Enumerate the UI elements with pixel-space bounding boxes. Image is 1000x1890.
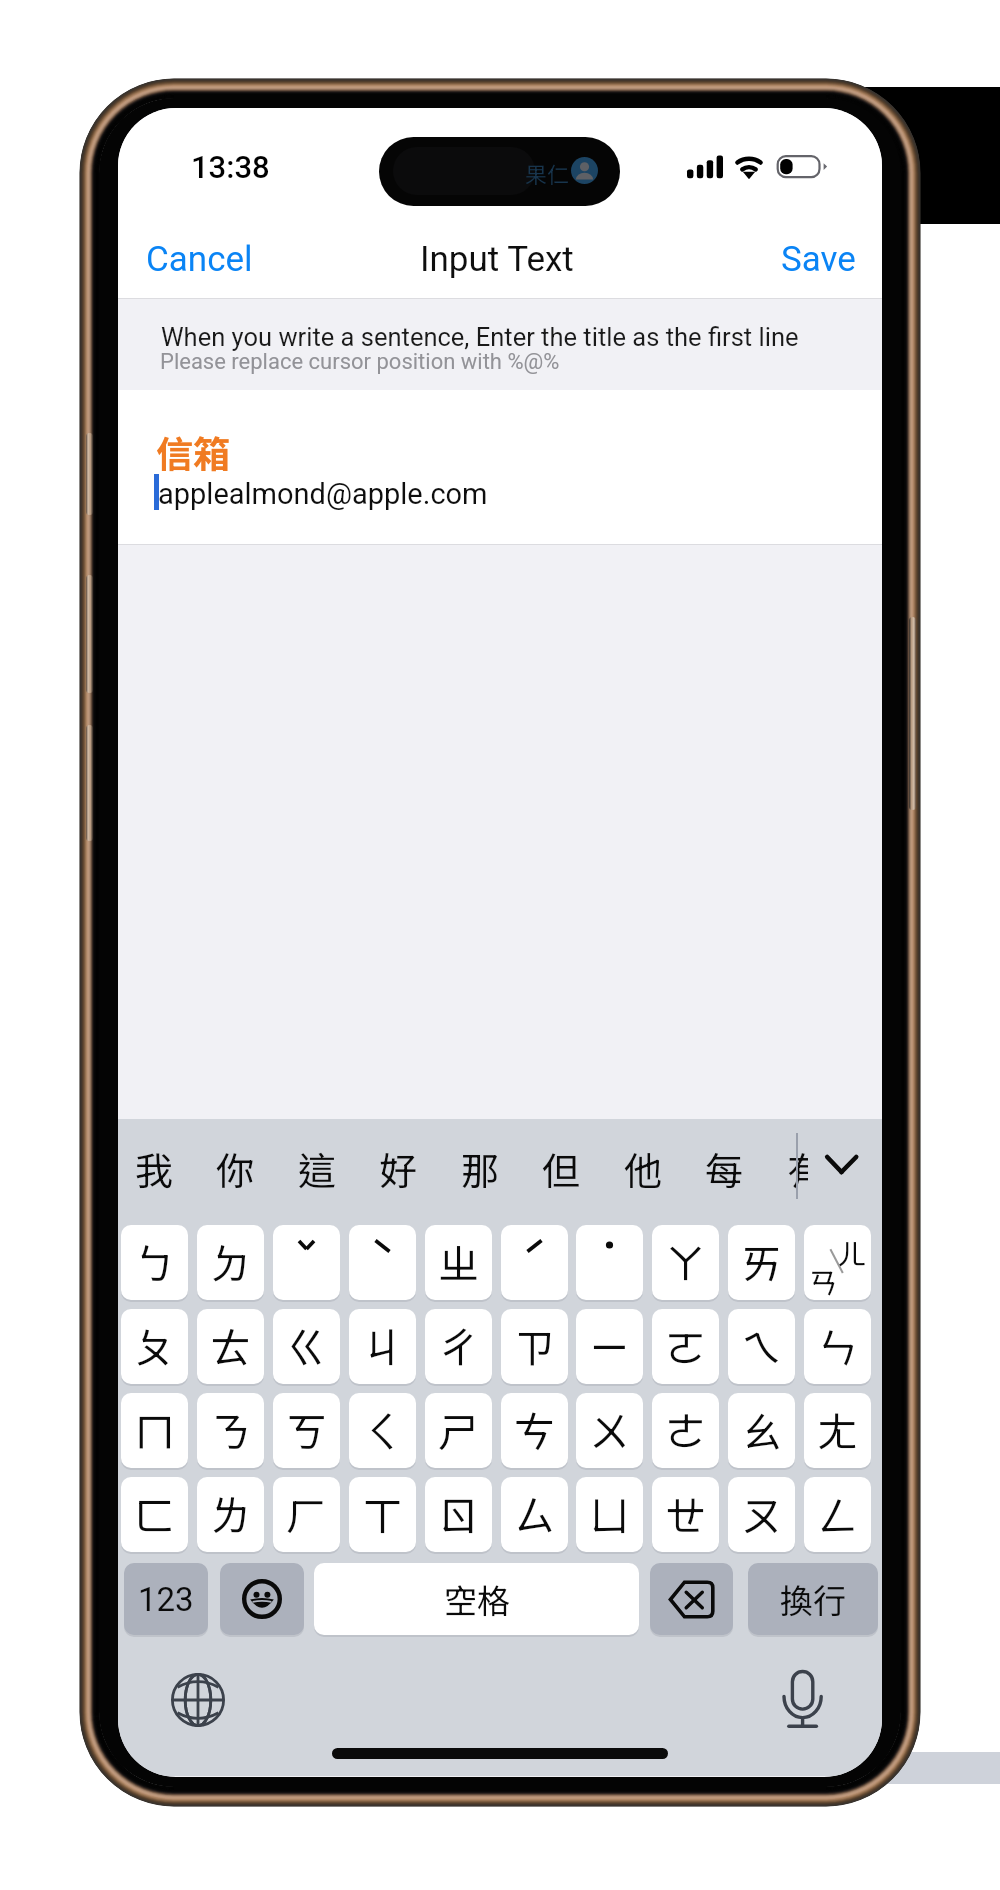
button[interactable]: ㄨ bbox=[576, 1393, 643, 1468]
staticText: ㄈ bbox=[134, 1483, 175, 1542]
staticText: 好 bbox=[379, 1141, 418, 1196]
staticText: 空格 bbox=[444, 1575, 510, 1623]
button[interactable]: ㄊ bbox=[197, 1309, 264, 1384]
button[interactable]: 有 bbox=[766, 1119, 846, 1217]
button[interactable]: ㄩ bbox=[576, 1477, 643, 1552]
staticText: ㄗ bbox=[514, 1315, 555, 1374]
staticText: ㄌ bbox=[210, 1483, 251, 1542]
button[interactable]: ㄧ bbox=[576, 1309, 643, 1384]
button[interactable]: ㄥ bbox=[804, 1477, 871, 1552]
staticText: 123 bbox=[138, 1580, 194, 1619]
staticText: ㄦ bbox=[837, 1231, 867, 1273]
button[interactable]: Dictation bbox=[766, 1662, 838, 1734]
staticText: ㄛ bbox=[665, 1315, 706, 1374]
button[interactable]: ㄟ bbox=[728, 1309, 795, 1384]
button[interactable]: Hide predictions bbox=[808, 1119, 882, 1217]
staticText: 果仁 bbox=[525, 157, 570, 189]
staticText: ㄐ bbox=[362, 1315, 403, 1374]
button[interactable]: Change keyboard bbox=[162, 1664, 234, 1736]
staticText: ㄣ bbox=[817, 1315, 858, 1374]
button[interactable]: ㄕ bbox=[425, 1393, 492, 1468]
button[interactable]: ㄓ bbox=[425, 1225, 492, 1300]
button[interactable]: 換行 bbox=[748, 1563, 878, 1635]
button[interactable]: 好 bbox=[358, 1119, 438, 1217]
staticText: ㄋ bbox=[210, 1399, 251, 1458]
staticText: ㄒ bbox=[362, 1483, 403, 1542]
staticText: applealmond@apple.com bbox=[158, 477, 488, 511]
button[interactable]: ㄑ bbox=[349, 1393, 416, 1468]
button[interactable]: ㄏ bbox=[273, 1477, 340, 1552]
button[interactable]: ㄠ bbox=[728, 1393, 795, 1468]
staticText: Cancel bbox=[146, 239, 253, 280]
staticText: 但 bbox=[542, 1141, 581, 1196]
button[interactable]: 他 bbox=[603, 1119, 683, 1217]
button[interactable]: ㄛ bbox=[652, 1309, 719, 1384]
button[interactable]: ㄉ bbox=[197, 1225, 264, 1300]
staticText: 那 bbox=[461, 1141, 500, 1196]
button[interactable]: Emoji bbox=[220, 1563, 304, 1635]
button[interactable]: ㄆ bbox=[121, 1309, 188, 1384]
button[interactable]: Save bbox=[759, 225, 876, 296]
staticText: 我 bbox=[135, 1141, 174, 1196]
button[interactable] bbox=[349, 1225, 416, 1300]
staticText: ㄤ bbox=[817, 1399, 858, 1458]
button[interactable]: ㄙ bbox=[501, 1477, 568, 1552]
staticText: When you write a sentence, Enter the tit… bbox=[161, 322, 799, 352]
button[interactable]: ㄔ bbox=[425, 1309, 492, 1384]
staticText: ㄚ bbox=[665, 1231, 706, 1290]
button[interactable] bbox=[576, 1225, 643, 1300]
staticText: ㄡ bbox=[741, 1483, 782, 1542]
staticText: ㄠ bbox=[741, 1399, 782, 1458]
button[interactable]: ㄢ bbox=[804, 1225, 871, 1300]
staticText: ㄆ bbox=[134, 1315, 175, 1374]
button[interactable]: 每 bbox=[684, 1119, 764, 1217]
staticText: 信箱 bbox=[156, 425, 230, 479]
button[interactable]: ㄚ bbox=[652, 1225, 719, 1300]
button[interactable]: ㄎ bbox=[273, 1393, 340, 1468]
button[interactable]: 但 bbox=[521, 1119, 601, 1217]
button[interactable] bbox=[273, 1225, 340, 1300]
button[interactable]: 空格 bbox=[314, 1563, 639, 1635]
button[interactable]: ㄞ bbox=[728, 1225, 795, 1300]
button[interactable]: ㄣ bbox=[804, 1309, 871, 1384]
button[interactable]: ㄡ bbox=[728, 1477, 795, 1552]
button[interactable]: Backspace bbox=[650, 1563, 733, 1635]
staticText: 他 bbox=[624, 1141, 663, 1196]
staticText: 每 bbox=[705, 1141, 744, 1196]
button[interactable]: ㄐ bbox=[349, 1309, 416, 1384]
button[interactable]: ㄅ bbox=[121, 1225, 188, 1300]
staticText: ㄧ bbox=[589, 1315, 630, 1374]
staticText: ㄉ bbox=[210, 1231, 251, 1290]
button[interactable]: ㄗ bbox=[501, 1309, 568, 1384]
button[interactable]: ㄇ bbox=[121, 1393, 188, 1468]
staticText: ㄓ bbox=[438, 1231, 479, 1290]
button[interactable]: 這 bbox=[277, 1119, 357, 1217]
staticText: ㄘ bbox=[514, 1399, 555, 1458]
button[interactable]: ㄌ bbox=[197, 1477, 264, 1552]
button[interactable]: ㄖ bbox=[425, 1477, 492, 1552]
staticText: ㄅ bbox=[134, 1231, 175, 1290]
button[interactable]: 你 bbox=[195, 1119, 275, 1217]
staticText: ㄊ bbox=[210, 1315, 251, 1374]
staticText: ㄎ bbox=[286, 1399, 327, 1458]
staticText: ㄑ bbox=[362, 1399, 403, 1458]
button[interactable]: Cancel bbox=[126, 225, 275, 296]
button[interactable]: 123 bbox=[124, 1563, 208, 1635]
button[interactable]: ㄘ bbox=[501, 1393, 568, 1468]
button[interactable]: ㄤ bbox=[804, 1393, 871, 1468]
button[interactable]: ㄝ bbox=[652, 1477, 719, 1552]
staticText: 13:38 bbox=[191, 149, 270, 185]
button[interactable] bbox=[501, 1225, 568, 1300]
button[interactable]: ㄜ bbox=[652, 1393, 719, 1468]
button[interactable]: ㄒ bbox=[349, 1477, 416, 1552]
button[interactable]: 我 bbox=[118, 1119, 194, 1217]
button[interactable]: ㄈ bbox=[121, 1477, 188, 1552]
staticText: ㄥ bbox=[817, 1483, 858, 1542]
staticText: 有 bbox=[787, 1141, 826, 1196]
button[interactable]: ㄋ bbox=[197, 1393, 264, 1468]
staticText: Input Text bbox=[420, 239, 574, 280]
button[interactable]: ㄍ bbox=[273, 1309, 340, 1384]
staticText: ㄜ bbox=[665, 1399, 706, 1458]
staticText: ㄝ bbox=[665, 1483, 706, 1542]
button[interactable]: 那 bbox=[440, 1119, 520, 1217]
